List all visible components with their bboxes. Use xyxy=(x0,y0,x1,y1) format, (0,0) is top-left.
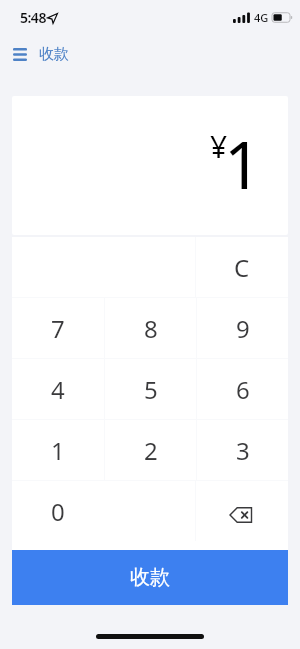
staticText: 3 xyxy=(236,434,250,467)
staticText: 2 xyxy=(144,434,158,467)
staticText: 4G xyxy=(254,10,269,25)
staticText: 5:48 xyxy=(20,8,46,27)
button[interactable]: 2 xyxy=(105,420,196,480)
staticText: 1 xyxy=(224,120,262,209)
staticText: 0 xyxy=(51,495,65,528)
button[interactable]: 5 xyxy=(105,359,196,419)
button[interactable]: 4 xyxy=(12,359,104,419)
button[interactable]: 3 xyxy=(197,420,288,480)
staticText: 7 xyxy=(51,312,65,345)
button[interactable]: 6 xyxy=(197,359,288,419)
staticText: 1 xyxy=(51,434,65,467)
staticText: 收款 xyxy=(130,565,170,590)
staticText: 6 xyxy=(236,373,250,406)
staticText: C xyxy=(234,251,250,284)
button[interactable]: 0 xyxy=(12,481,103,541)
button[interactable] xyxy=(13,48,27,61)
staticText: 5 xyxy=(144,373,158,406)
button[interactable]: 8 xyxy=(105,298,196,358)
button[interactable] xyxy=(196,481,288,541)
staticText: 9 xyxy=(236,312,250,345)
button[interactable]: 7 xyxy=(12,298,104,358)
button[interactable]: 1 xyxy=(12,420,104,480)
button[interactable]: 收款 xyxy=(12,550,288,605)
staticText: 4 xyxy=(51,373,65,406)
staticText: ¥ xyxy=(210,126,228,167)
button[interactable]: 收款 xyxy=(39,45,69,64)
button[interactable]: C xyxy=(196,237,288,297)
button[interactable]: 9 xyxy=(197,298,288,358)
staticText: 8 xyxy=(144,312,158,345)
